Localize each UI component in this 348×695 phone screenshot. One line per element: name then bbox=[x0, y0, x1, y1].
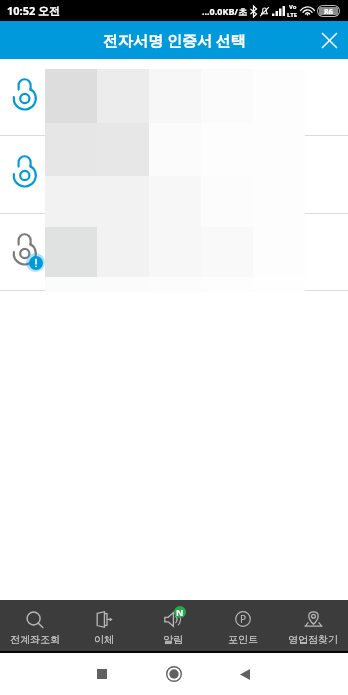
button[interactable]: 닫기 bbox=[311, 21, 348, 59]
staticText: 전자서명 인증서 선택 bbox=[103, 30, 246, 50]
staticText: N bbox=[176, 606, 184, 618]
staticText: 전계좌조회 bbox=[10, 633, 60, 646]
button[interactable]: 전계좌조회 bbox=[0, 600, 69, 651]
staticText: 이체 bbox=[94, 633, 114, 646]
staticText: Vo bbox=[289, 3, 297, 11]
staticText: 86 bbox=[324, 6, 334, 14]
staticText: 10:52 오전 bbox=[7, 3, 61, 18]
button[interactable]: 홈 bbox=[154, 654, 194, 694]
button[interactable] bbox=[0, 136, 348, 213]
button[interactable] bbox=[0, 59, 348, 135]
button[interactable]: P bbox=[208, 600, 278, 651]
staticText: 포인트 bbox=[228, 633, 258, 646]
staticText: ...0.0KB/초 bbox=[202, 5, 248, 17]
staticText: LTE bbox=[287, 11, 298, 19]
button[interactable]: 뒤로 bbox=[225, 654, 265, 694]
button[interactable]: 영업점찾기 bbox=[278, 600, 348, 651]
button[interactable]: N bbox=[138, 600, 208, 651]
button[interactable]: 최근 앱 bbox=[82, 654, 122, 694]
staticText: P bbox=[240, 612, 247, 626]
staticText: 알림 bbox=[163, 633, 183, 646]
button[interactable]: 이체 bbox=[69, 600, 138, 651]
staticText: 영업점찾기 bbox=[288, 633, 338, 646]
button[interactable] bbox=[0, 214, 348, 290]
